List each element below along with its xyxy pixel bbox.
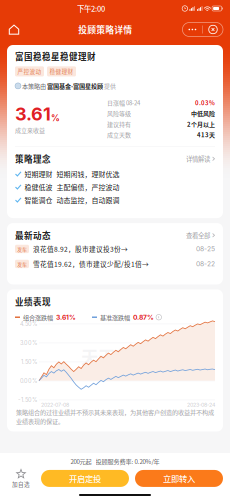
staticText: 雪花值19.62，债市建议少配/投1倍→ xyxy=(33,259,149,269)
staticText: 200元起 xyxy=(70,457,91,466)
staticText: 成立天数 xyxy=(107,130,131,139)
staticText: 发车 xyxy=(17,245,27,253)
button[interactable]: 发车 xyxy=(15,241,215,256)
staticText: 天天基金 xyxy=(81,344,149,369)
staticText: 投顾策略详情 xyxy=(78,23,132,36)
staticText: 稳健理财 xyxy=(49,67,73,75)
staticText: 加自选 xyxy=(12,480,30,488)
staticText: 查看全部 xyxy=(186,231,210,240)
button[interactable]: 发车 xyxy=(15,256,215,271)
button[interactable]: 立即转入 xyxy=(135,470,223,487)
staticText: 投顾服务费率: 0.20%/年 xyxy=(95,457,159,466)
staticText: % xyxy=(51,113,60,123)
staticText: 3.61 xyxy=(15,103,51,125)
staticText: 2个月以上 xyxy=(187,120,215,128)
staticText: 2022-07-08 xyxy=(41,402,69,408)
staticText: 0.00% xyxy=(20,377,37,384)
staticText: 基准涨跌幅 xyxy=(100,313,130,322)
staticText: 413天 xyxy=(197,130,215,139)
staticText: 1.50% xyxy=(21,358,37,365)
staticText: 发车 xyxy=(17,260,27,268)
staticText: 最新动态 xyxy=(15,229,51,241)
button[interactable]: Home xyxy=(0,18,28,40)
button[interactable]: 详情解读 xyxy=(186,154,215,163)
staticText: 策略组合的过往业绩并不预示其未来表现，为其他客户创造的收益并不构成业绩表现的保证… xyxy=(16,408,214,425)
staticText: -1.50% xyxy=(18,396,37,403)
staticText: 风险等级 xyxy=(107,109,131,118)
button[interactable]: Close xyxy=(203,22,223,36)
staticText: 详情解读 xyxy=(186,154,210,163)
button[interactable]: More options xyxy=(182,22,202,36)
staticText: 短期理财 短期闲钱，理财优选 xyxy=(24,169,119,179)
staticText: 08-22 xyxy=(196,260,215,268)
staticText: 中低风险 xyxy=(191,109,215,118)
staticText: 3.61% xyxy=(56,313,76,321)
staticText: 提供 xyxy=(103,82,116,90)
staticText: 稳健低波 主配偏债，严控波动 xyxy=(24,182,119,192)
staticText: 智能调仓 动态监控，自动跟调 xyxy=(24,195,119,205)
staticText: 本策略由 xyxy=(21,81,47,90)
staticText: 业绩表现 xyxy=(15,295,51,308)
staticText: 成立来收益 xyxy=(15,126,45,134)
staticText: 0.87% xyxy=(133,313,154,321)
button[interactable]: 查看全部 xyxy=(186,231,215,240)
button[interactable]: 加自选 xyxy=(7,469,35,488)
staticText: 开启定投 xyxy=(69,472,101,484)
staticText: 日涨幅 08-24 xyxy=(107,98,140,107)
staticText: 2023-08-24 xyxy=(187,402,215,408)
staticText: 4.50% xyxy=(20,320,37,327)
staticText: 建议持有 xyxy=(107,120,131,128)
staticText: 策略理念 xyxy=(15,153,51,165)
button[interactable]: 开启定投 xyxy=(41,470,129,487)
staticText: 富国基金-富国星投顾 xyxy=(47,81,103,90)
staticText: 3.00% xyxy=(20,339,37,346)
staticText: 浪花值8.92，股市建议投3份→ xyxy=(33,244,128,254)
staticText: 严控波动 xyxy=(17,67,41,75)
staticText: 08-25 xyxy=(196,245,215,253)
staticText: 下午2:00 xyxy=(77,3,105,14)
staticText: 组合涨跌幅 xyxy=(23,313,53,322)
staticText: 0.03% xyxy=(195,98,215,107)
staticText: 富国稳稳星稳健理财 xyxy=(15,50,96,62)
staticText: 立即转入 xyxy=(163,472,195,484)
